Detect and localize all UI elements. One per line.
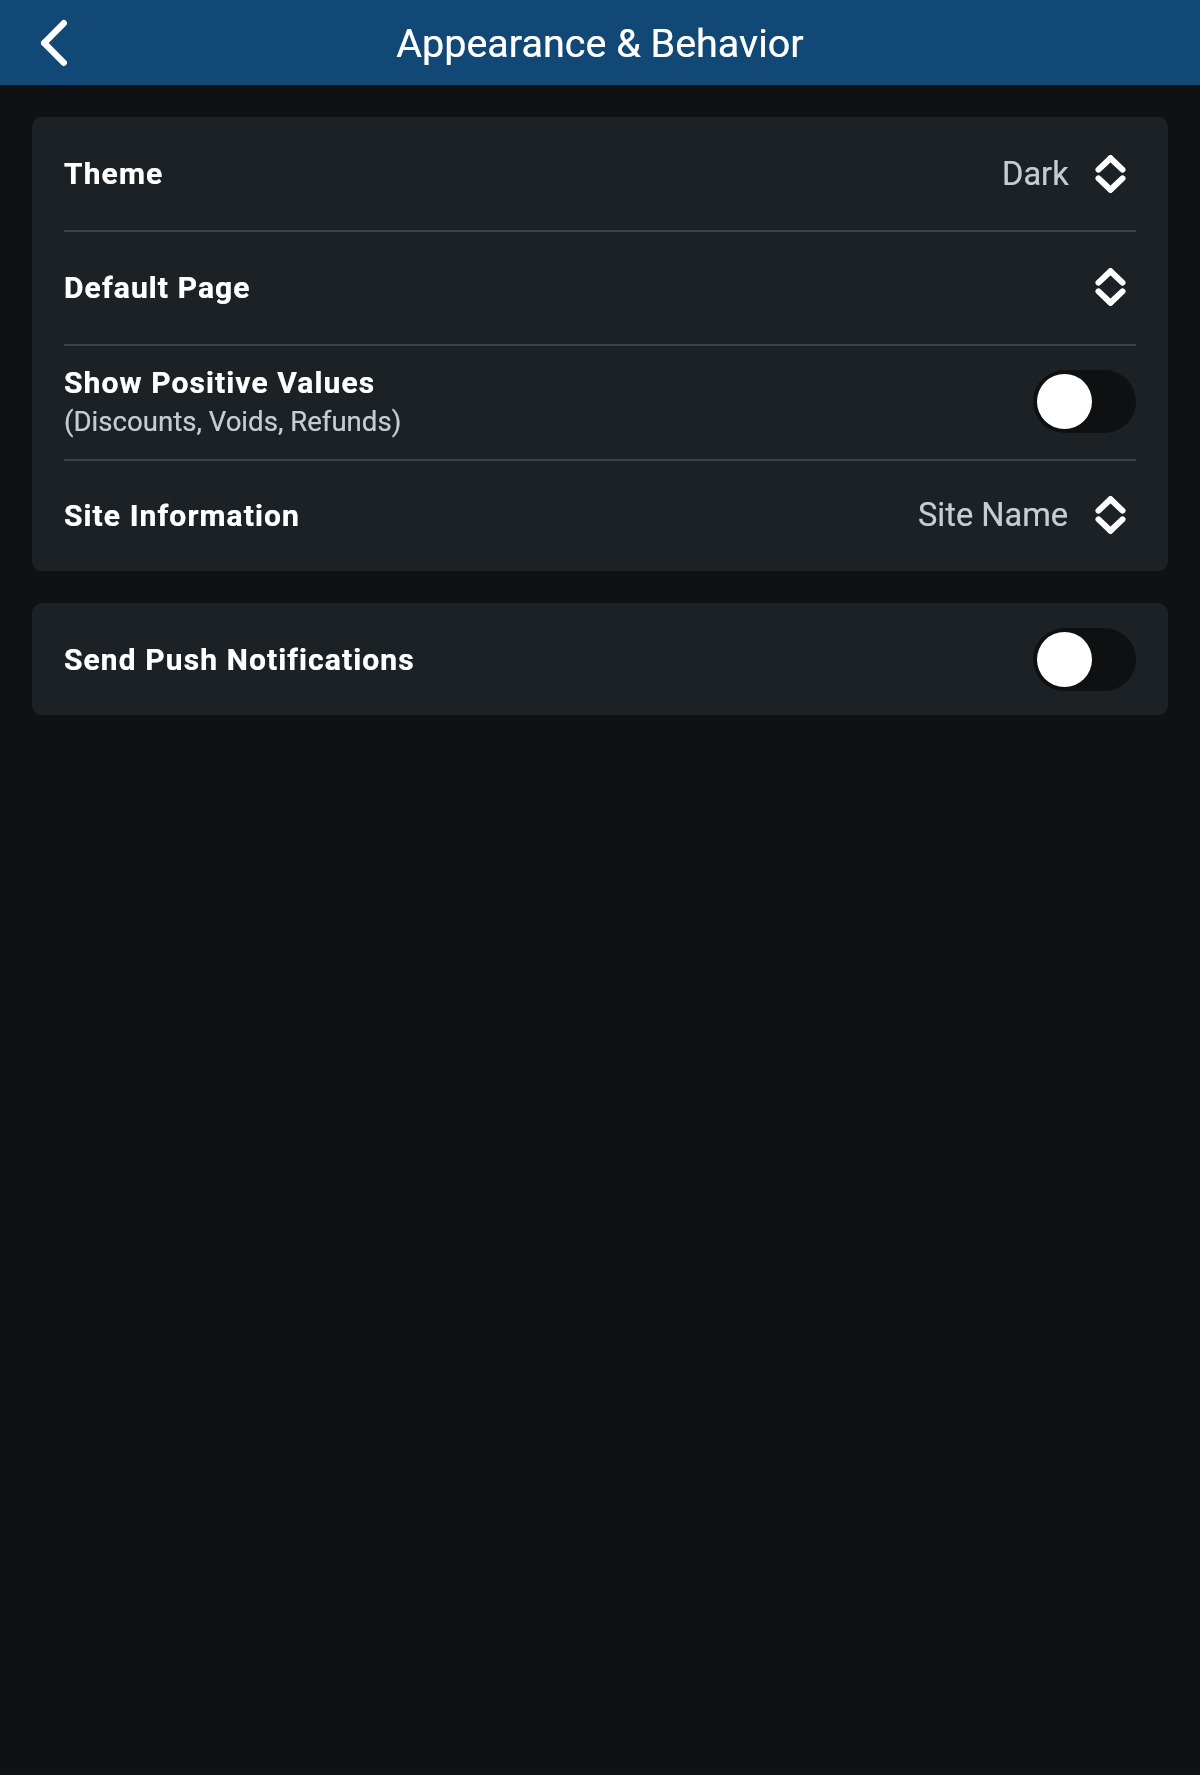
- staticText: Theme: [64, 156, 164, 191]
- button[interactable]: Show Positive Values: [1033, 370, 1136, 433]
- button[interactable]: Site Information: [32, 459, 1168, 571]
- staticText: Default Page: [64, 270, 251, 305]
- staticText: Send Push Notifications: [64, 642, 415, 677]
- button[interactable]: Theme: [32, 117, 1168, 230]
- button[interactable]: Show Positive Values: [32, 344, 1168, 459]
- staticText: Dark: [1002, 155, 1069, 193]
- button[interactable]: Send Push Notifications: [1033, 628, 1136, 691]
- button[interactable]: Send Push Notifications: [32, 603, 1168, 715]
- staticText: Site Name: [918, 496, 1069, 534]
- staticText: (Discounts, Voids, Refunds): [64, 405, 402, 437]
- staticText: Appearance & Behavior: [396, 20, 804, 66]
- button[interactable]: Default Page: [32, 230, 1168, 344]
- staticText: Show Positive Values: [64, 365, 376, 400]
- button[interactable]: Back: [10, 0, 98, 85]
- staticText: Site Information: [64, 498, 300, 533]
